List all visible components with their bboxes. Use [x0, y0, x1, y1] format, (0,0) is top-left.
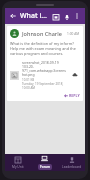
staticText: screenshot_2018-09-19 103-20- 971_com.wh… — [22, 60, 68, 77]
button[interactable]: Calendar — [50, 11, 61, 22]
button[interactable]: REPLY — [64, 93, 80, 98]
button[interactable]: More options — [72, 11, 82, 21]
staticText: 10.01 KB — [22, 78, 35, 82]
button[interactable]: My Unit — [5, 154, 31, 171]
button[interactable]: Notifications — [61, 11, 72, 22]
button[interactable]: Back — [8, 11, 18, 21]
staticText: REPLY — [69, 93, 80, 98]
button[interactable]: screenshot_2018-09-19 103-20- 971_com.wh… — [10, 60, 80, 90]
staticText: What is the definition of my inform? Hel… — [10, 41, 80, 56]
button[interactable]: Johnson Charle — [7, 26, 83, 101]
button[interactable]: Download — [70, 70, 80, 80]
staticText: Johnson Charle — [22, 30, 67, 37]
staticText: Forum — [40, 165, 50, 169]
staticText: My Unit — [12, 165, 24, 169]
staticText: 1:00 AM — [67, 32, 80, 36]
button[interactable]: Forum — [31, 154, 58, 171]
staticText: What is the d... — [20, 11, 50, 21]
staticText: Tuesday, 19 September 2018, 10:00 AM — [22, 82, 68, 90]
staticText: Leaderboard — [62, 165, 82, 169]
button[interactable]: Leaderboard — [58, 154, 85, 171]
